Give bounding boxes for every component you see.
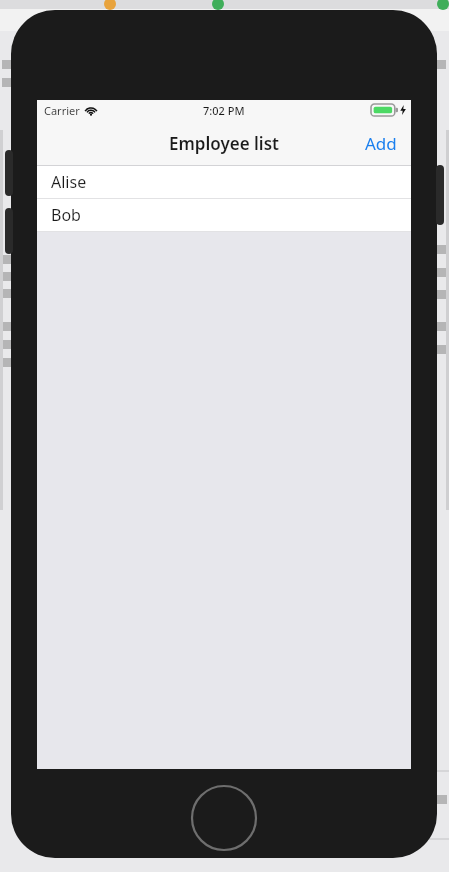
staticText: Bob — [51, 204, 81, 226]
other: Wi-Fi signal — [85, 106, 97, 116]
staticText: Add — [365, 132, 397, 155]
staticText: Alise — [51, 171, 87, 193]
button[interactable]: Add — [351, 124, 411, 163]
staticText: Employee list — [169, 132, 279, 155]
button[interactable]: Alise — [37, 166, 411, 199]
staticText: 7:02 PM — [203, 103, 245, 118]
staticText: Carrier — [44, 103, 80, 118]
other: Battery charging — [371, 104, 406, 116]
button[interactable]: Bob — [37, 199, 411, 232]
other: Home — [0, 0, 449, 872]
